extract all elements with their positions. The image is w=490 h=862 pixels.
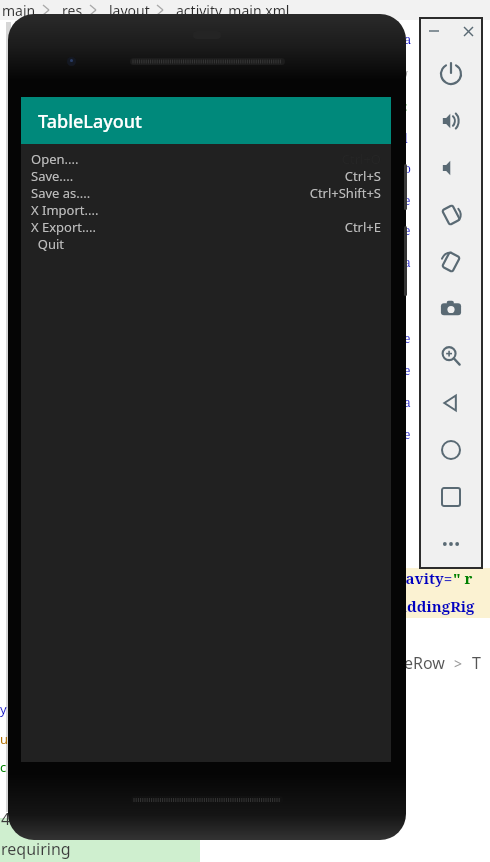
staticText: > [454, 654, 463, 673]
staticText: e [404, 330, 411, 346]
staticText: requiring [1, 838, 71, 860]
staticText: main [2, 1, 36, 20]
button[interactable]: TableLayout [21, 97, 391, 144]
staticText: eRow [404, 652, 445, 674]
button[interactable]: More [422, 520, 480, 567]
staticText: Ctrl+Shift+S [309, 184, 381, 201]
staticText: e [404, 222, 411, 238]
button[interactable]: Rotate right [422, 238, 480, 285]
button[interactable]: Volume up [422, 97, 480, 144]
button[interactable]: Home [422, 426, 480, 473]
button[interactable]: Rotate left [422, 191, 480, 238]
staticText: o [404, 160, 411, 176]
staticText: c [0, 758, 7, 776]
staticText: l [404, 130, 408, 146]
staticText: addingRig [398, 596, 475, 616]
staticText: Quit [31, 235, 381, 252]
staticText: : [404, 98, 408, 114]
staticText: Ctrl+E [344, 218, 381, 235]
button[interactable]: X Import.... [21, 201, 391, 218]
staticText: u [0, 730, 9, 748]
staticText: " r [453, 568, 473, 588]
button[interactable]: Minimise [424, 21, 444, 41]
staticText: / [404, 68, 408, 84]
staticText: e [404, 192, 411, 208]
button[interactable]: X Export.... [21, 218, 391, 235]
staticText: T [472, 652, 481, 674]
staticText: e [404, 362, 411, 378]
staticText: X Import.... [31, 201, 381, 218]
button[interactable]: Volume down [422, 144, 480, 191]
button[interactable]: Save.... [21, 167, 391, 184]
staticText: res [62, 1, 83, 20]
staticText: activity_main.xml [176, 1, 290, 20]
button[interactable]: Close [458, 21, 478, 41]
button[interactable]: Quit [21, 235, 391, 252]
staticText: Ctrl+S [344, 167, 381, 184]
staticText: 4 [1, 808, 11, 830]
staticText: Save as.... [31, 184, 309, 201]
button[interactable]: Overview [422, 473, 480, 520]
button[interactable]: Screenshot [422, 285, 480, 332]
staticText: TableLayout [38, 109, 142, 134]
staticText: y [0, 700, 7, 718]
staticText: a [404, 30, 412, 48]
button[interactable]: Power [422, 50, 480, 97]
staticText: Open.... [31, 150, 341, 167]
staticText: Save.... [31, 167, 344, 184]
button[interactable]: Open.... [21, 150, 391, 167]
staticText: layout [109, 1, 150, 20]
staticText: X Export.... [31, 218, 344, 235]
staticText: ravity= [398, 568, 453, 588]
staticText: e [404, 426, 411, 442]
staticText: a [404, 254, 411, 270]
button[interactable]: Back [422, 379, 480, 426]
staticText: a [404, 394, 411, 410]
button[interactable]: Save as.... [21, 184, 391, 201]
button[interactable]: Zoom [422, 332, 480, 379]
